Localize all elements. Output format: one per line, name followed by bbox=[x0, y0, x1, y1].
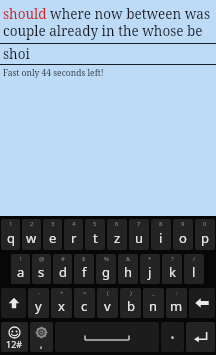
staticText: ) bbox=[130, 289, 132, 297]
button[interactable]: 8 bbox=[151, 219, 171, 250]
staticText: b bbox=[127, 297, 135, 315]
staticText: Fast only 44 seconds left! bbox=[3, 67, 104, 79]
staticText: f bbox=[82, 263, 87, 281]
button[interactable]: 7 bbox=[129, 219, 149, 250]
button[interactable]: Space bbox=[55, 322, 159, 352]
staticText: ! bbox=[20, 255, 22, 263]
staticText: 4 bbox=[72, 220, 76, 228]
button[interactable]: * bbox=[140, 254, 160, 284]
staticText: should where now between was couple alre… bbox=[3, 5, 213, 40]
staticText: - bbox=[38, 289, 40, 297]
staticText: _ bbox=[152, 289, 155, 297]
staticText: 2 bbox=[30, 220, 34, 228]
staticText: p bbox=[201, 229, 209, 247]
button[interactable]: 2 bbox=[22, 219, 41, 250]
staticText: a bbox=[17, 263, 25, 281]
staticText: i bbox=[159, 229, 163, 247]
staticText: = bbox=[83, 289, 87, 297]
staticText: 8 bbox=[159, 220, 163, 228]
button[interactable]: ) bbox=[120, 288, 141, 318]
staticText: & bbox=[126, 255, 131, 263]
staticText: / bbox=[193, 255, 196, 263]
staticText: r bbox=[71, 229, 77, 247]
button[interactable]: 4 bbox=[64, 219, 83, 250]
button[interactable]: 5 bbox=[85, 219, 105, 250]
button[interactable]: 0 bbox=[195, 219, 215, 250]
staticText: o bbox=[179, 229, 187, 247]
staticText: m bbox=[170, 297, 183, 315]
button[interactable]: 1 bbox=[1, 219, 20, 250]
staticText: + bbox=[60, 289, 64, 297]
button[interactable]: $ bbox=[74, 254, 94, 284]
staticText: e bbox=[49, 229, 57, 247]
staticText: 6 bbox=[115, 220, 119, 228]
button[interactable]: - bbox=[28, 288, 49, 318]
staticText: t bbox=[93, 229, 98, 247]
button[interactable]: ! bbox=[11, 254, 30, 284]
staticText: z bbox=[114, 229, 121, 247]
staticText: ? bbox=[171, 255, 174, 263]
staticText: j bbox=[148, 263, 152, 281]
staticText: shoi bbox=[3, 45, 30, 63]
button[interactable]: 3 bbox=[43, 219, 62, 250]
staticText: $ bbox=[82, 255, 86, 263]
staticText: 9 bbox=[181, 220, 185, 228]
staticText: g bbox=[102, 263, 110, 281]
button[interactable]: Symbols and emoji bbox=[1, 322, 28, 352]
button[interactable]: ( bbox=[97, 288, 118, 318]
staticText: u bbox=[135, 229, 144, 247]
button[interactable]: / bbox=[184, 254, 204, 284]
staticText: 3 bbox=[51, 220, 55, 228]
staticText: , bbox=[40, 338, 43, 350]
button[interactable]: 6 bbox=[107, 219, 127, 250]
button[interactable]: Shift bbox=[1, 288, 26, 318]
staticText: v bbox=[104, 297, 111, 315]
button[interactable]: Enter bbox=[186, 322, 215, 352]
staticText: 7 bbox=[137, 220, 141, 228]
staticText: 0 bbox=[203, 220, 207, 228]
button[interactable]: # bbox=[53, 254, 72, 284]
button[interactable]: Backspace bbox=[189, 288, 215, 318]
staticText: n bbox=[149, 297, 158, 315]
button[interactable]: _ bbox=[143, 288, 164, 318]
staticText: k bbox=[169, 263, 176, 281]
button[interactable]: @ bbox=[32, 254, 51, 284]
staticText: * bbox=[148, 255, 152, 263]
button[interactable]: % bbox=[96, 254, 116, 284]
staticText: 12# bbox=[6, 338, 23, 350]
staticText: l bbox=[192, 263, 196, 281]
staticText: q bbox=[7, 229, 15, 247]
staticText: 1 bbox=[9, 220, 13, 228]
button[interactable]: & bbox=[118, 254, 138, 284]
staticText: % bbox=[104, 255, 109, 263]
staticText: h bbox=[124, 263, 133, 281]
staticText: w bbox=[26, 229, 37, 247]
staticText: c bbox=[81, 297, 88, 315]
button[interactable]: : bbox=[166, 288, 187, 318]
button[interactable]: Period bbox=[161, 322, 184, 352]
staticText: d bbox=[59, 263, 67, 281]
button[interactable]: = bbox=[74, 288, 95, 318]
staticText: ( bbox=[107, 289, 109, 297]
button[interactable]: 9 bbox=[173, 219, 193, 250]
button[interactable]: Settings bbox=[30, 322, 53, 352]
staticText: # bbox=[61, 255, 65, 263]
staticText: : bbox=[176, 289, 178, 297]
button[interactable]: + bbox=[51, 288, 72, 318]
staticText: s bbox=[38, 263, 45, 281]
staticText: y bbox=[35, 297, 42, 315]
staticText: x bbox=[58, 297, 65, 315]
button[interactable]: ? bbox=[162, 254, 182, 284]
staticText: @ bbox=[39, 255, 45, 263]
staticText: 5 bbox=[93, 220, 97, 228]
